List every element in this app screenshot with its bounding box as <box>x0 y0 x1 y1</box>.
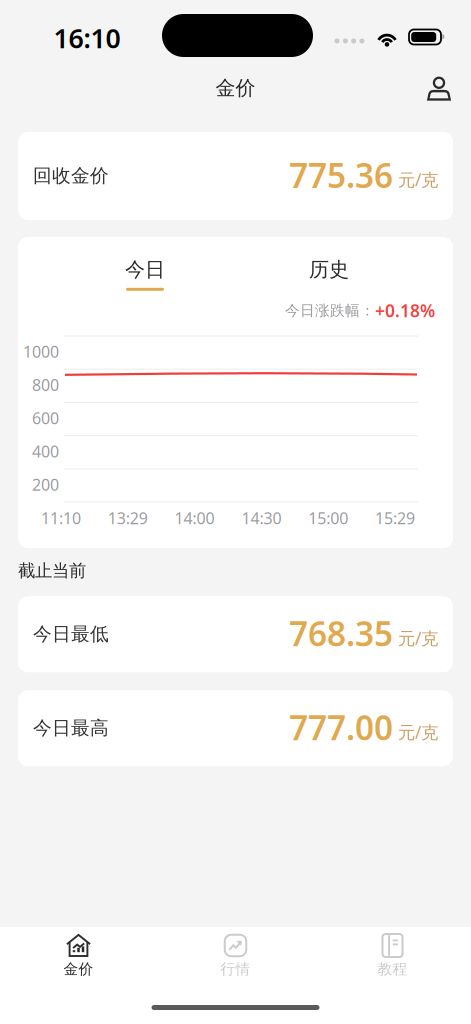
staticText: 200 <box>32 474 59 495</box>
button[interactable]: 历史 <box>267 253 391 295</box>
staticText: 回收金价 <box>33 164 109 187</box>
button[interactable]: Profile <box>417 67 461 111</box>
button[interactable]: 教程 <box>314 927 471 983</box>
staticText: 教程 <box>377 960 407 978</box>
staticText: 800 <box>32 374 59 395</box>
staticText: 今日最高 <box>33 716 109 739</box>
staticText: 15:00 <box>308 507 348 529</box>
staticText: 金价 <box>63 960 93 978</box>
staticText: 金价 <box>215 76 255 100</box>
staticText: 16:10 <box>53 20 120 56</box>
button[interactable]: 行情 <box>157 927 314 983</box>
staticText: 1000 <box>23 341 59 362</box>
staticText: 11:10 <box>41 507 81 529</box>
button[interactable]: 今日最高 <box>18 690 453 766</box>
staticText: +0.18% <box>375 299 435 322</box>
staticText: 13:29 <box>108 507 148 529</box>
button[interactable]: 回收金价 <box>18 132 453 220</box>
staticText: 今日最低 <box>33 622 109 645</box>
button[interactable]: 今日最低 <box>18 596 453 672</box>
staticText: 14:30 <box>241 507 281 529</box>
staticText: 777.00 <box>289 705 393 749</box>
staticText: 元/克 <box>398 626 438 649</box>
staticText: 15:29 <box>375 507 415 529</box>
staticText: 元/克 <box>398 720 438 743</box>
staticText: 历史 <box>309 257 349 282</box>
staticText: 600 <box>32 407 59 429</box>
staticText: 行情 <box>220 960 250 978</box>
staticText: 400 <box>32 441 59 462</box>
staticText: 768.35 <box>289 611 393 655</box>
button[interactable]: 金价 <box>0 927 157 983</box>
staticText: 14:00 <box>175 507 215 529</box>
staticText: 今日涨跌幅： <box>285 301 375 319</box>
button[interactable]: 今日 <box>83 253 207 295</box>
staticText: 元/克 <box>398 168 438 191</box>
staticText: 今日 <box>125 257 165 282</box>
staticText: 775.36 <box>289 153 393 197</box>
staticText: 截止当前 <box>18 560 86 581</box>
